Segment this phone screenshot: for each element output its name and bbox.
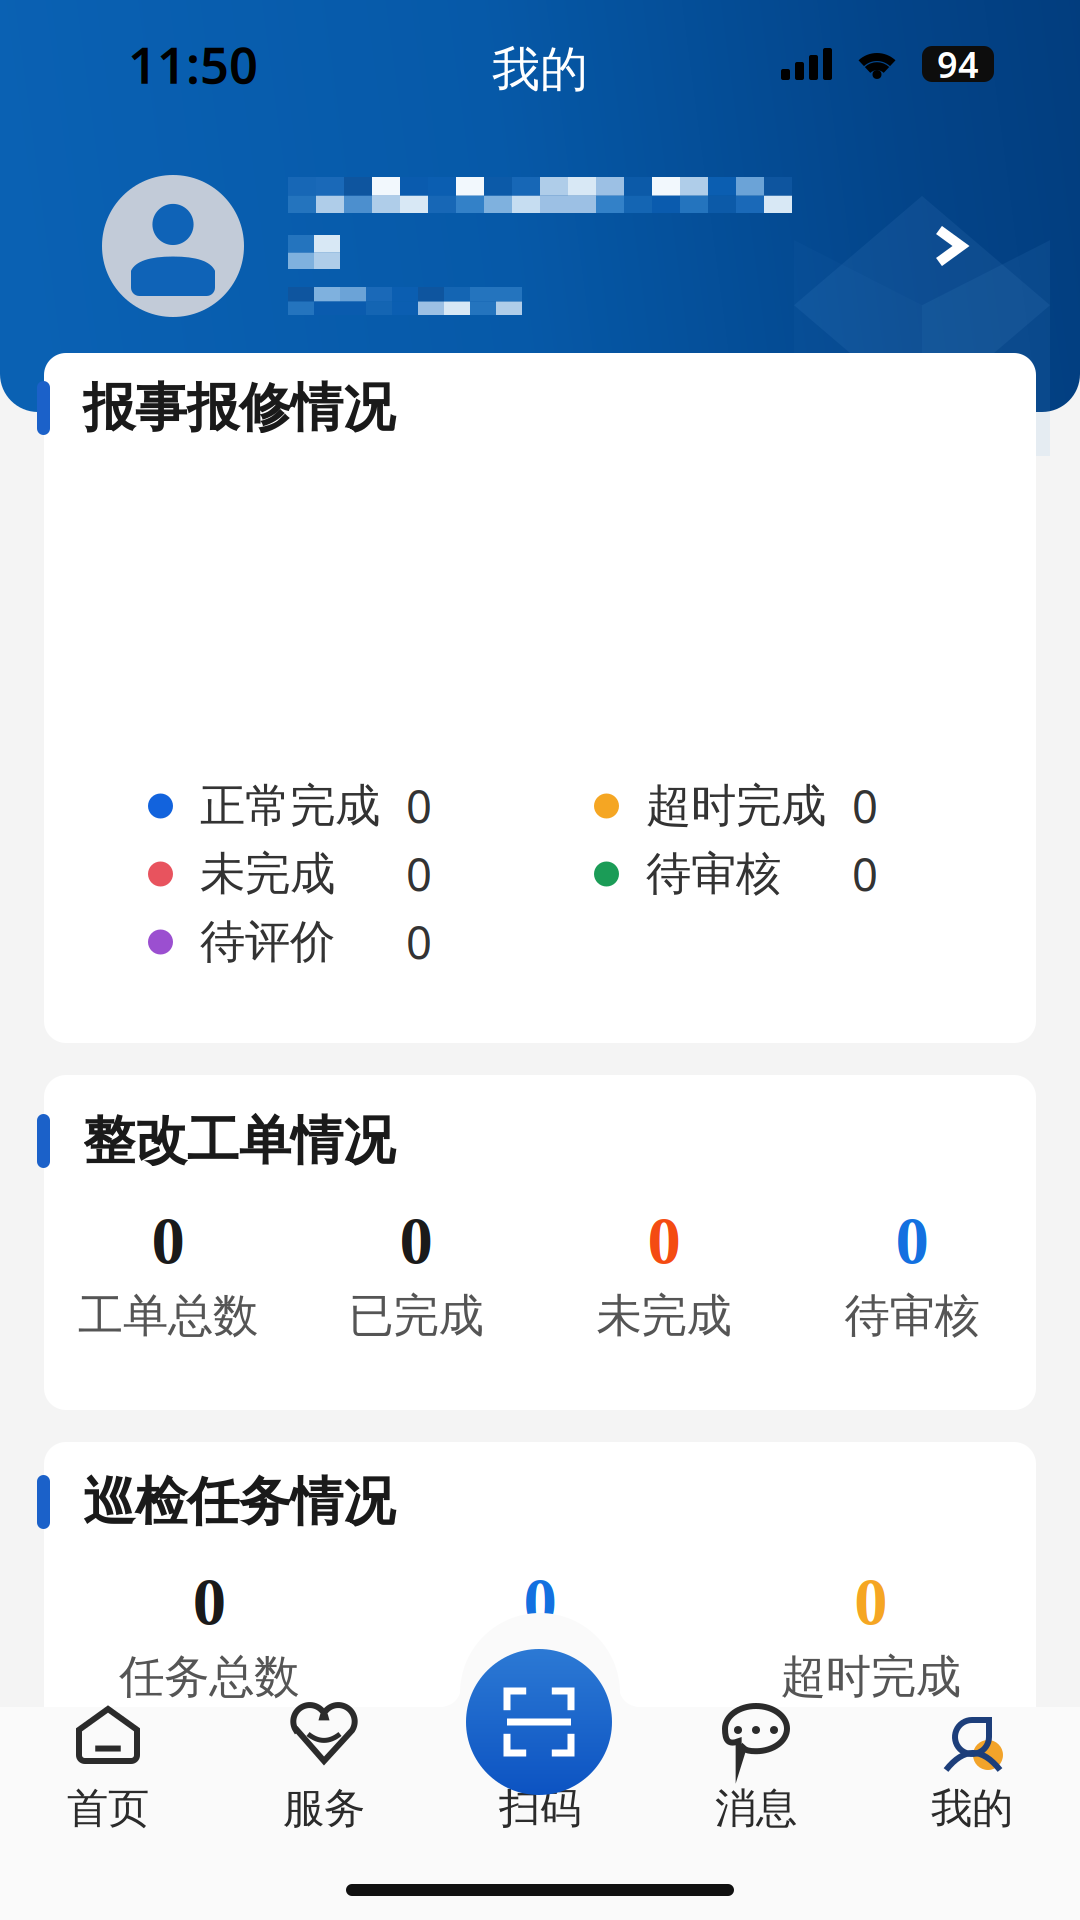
staticText: 94 [937,40,979,88]
staticText: 未完成 [596,1288,731,1344]
staticText: 0 [852,776,878,836]
staticText: 11:50 [128,30,258,98]
staticText: 0 [406,912,432,972]
staticText: 待评价 [200,914,335,970]
staticText: 超时完成 [781,1649,961,1705]
staticText: 正常完成 [200,778,380,834]
button[interactable] [0,175,1080,317]
staticText: 待审核 [646,846,781,902]
staticText: 0 [151,1204,184,1278]
staticText: 我的 [492,40,588,99]
button[interactable]: 扫码 [466,1649,612,1795]
staticText: 0 [399,1204,432,1278]
button[interactable]: 首页 [0,1709,216,1920]
staticText: 首页 [67,1783,149,1834]
staticText: 已完成 [472,1649,607,1705]
staticText: 扫码 [499,1783,581,1834]
staticText: 我的 [931,1783,1013,1834]
staticText: 0 [854,1565,887,1639]
button[interactable]: 扫码 [432,1709,648,1920]
staticText: 未完成 [200,846,335,902]
staticText: 0 [523,1565,556,1639]
staticText: 消息 [715,1783,797,1834]
staticText: 0 [647,1204,680,1278]
staticText: 超时完成 [646,778,826,834]
staticText: 0 [852,844,878,904]
staticText: 0 [193,1565,226,1639]
staticText: 工单总数 [78,1288,258,1344]
staticText: 0 [406,844,432,904]
staticText: 0 [406,776,432,836]
staticText: 0 [895,1204,928,1278]
button[interactable]: 我的 [864,1709,1080,1920]
staticText: 整改工单情况 [83,1109,395,1173]
staticText: 巡检任务情况 [83,1470,395,1534]
button[interactable]: 消息 [648,1709,864,1920]
staticText: 待审核 [844,1288,979,1344]
staticText: 任务总数 [119,1649,299,1705]
staticText: 服务 [283,1783,365,1834]
staticText: 报事报修情况 [83,376,395,440]
staticText: 已完成 [348,1288,483,1344]
button[interactable]: 服务 [216,1709,432,1920]
